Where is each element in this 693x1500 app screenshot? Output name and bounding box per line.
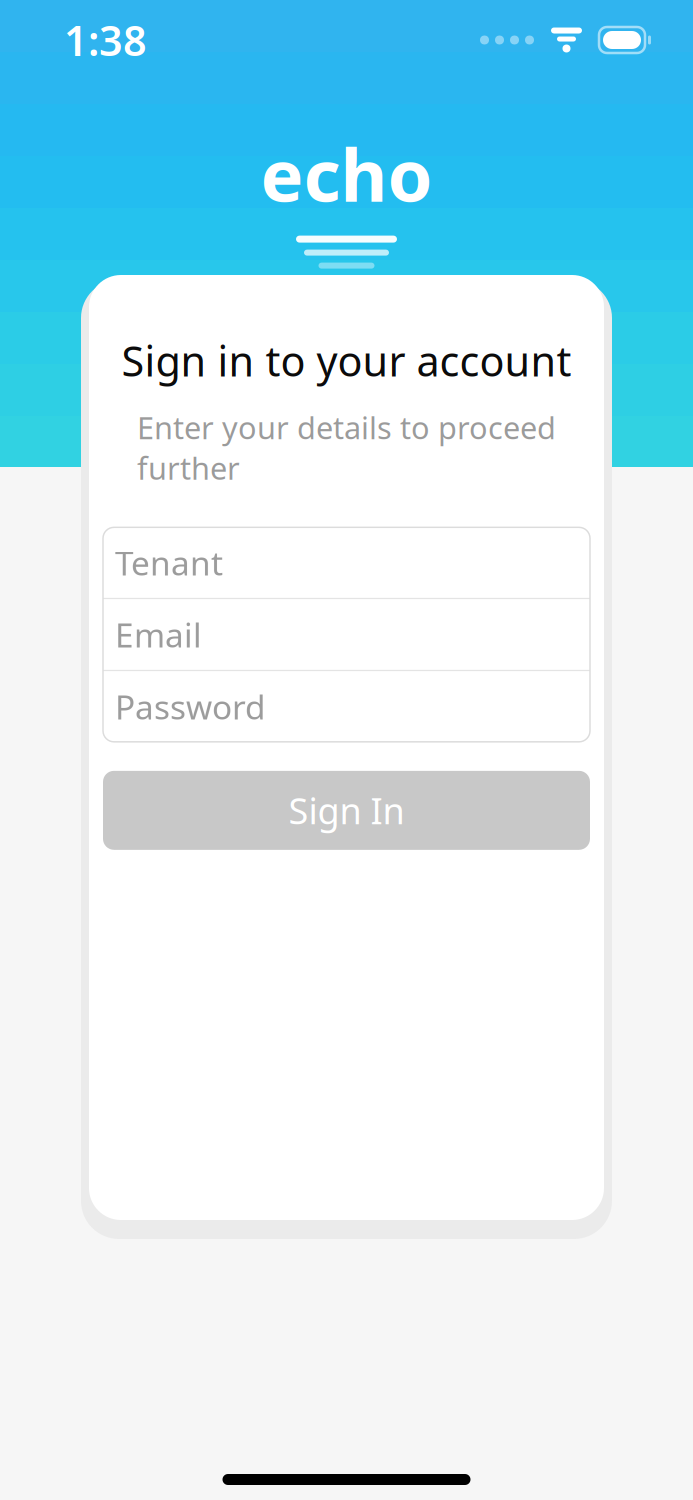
staticText: Sign In (288, 786, 404, 834)
staticText: echo (260, 126, 432, 222)
staticText: Tenant (115, 540, 223, 585)
button[interactable]: Sign In (103, 771, 590, 850)
staticText: Sign in to your account (121, 333, 571, 388)
staticText: Email (115, 612, 202, 657)
staticText: Enter your details to proceed further (137, 407, 556, 488)
staticText: Password (115, 684, 266, 729)
button[interactable]: Tenant (103, 527, 590, 598)
button[interactable]: Email (103, 599, 590, 670)
button[interactable]: Password (103, 671, 590, 742)
staticText: 1:38 (64, 13, 147, 67)
